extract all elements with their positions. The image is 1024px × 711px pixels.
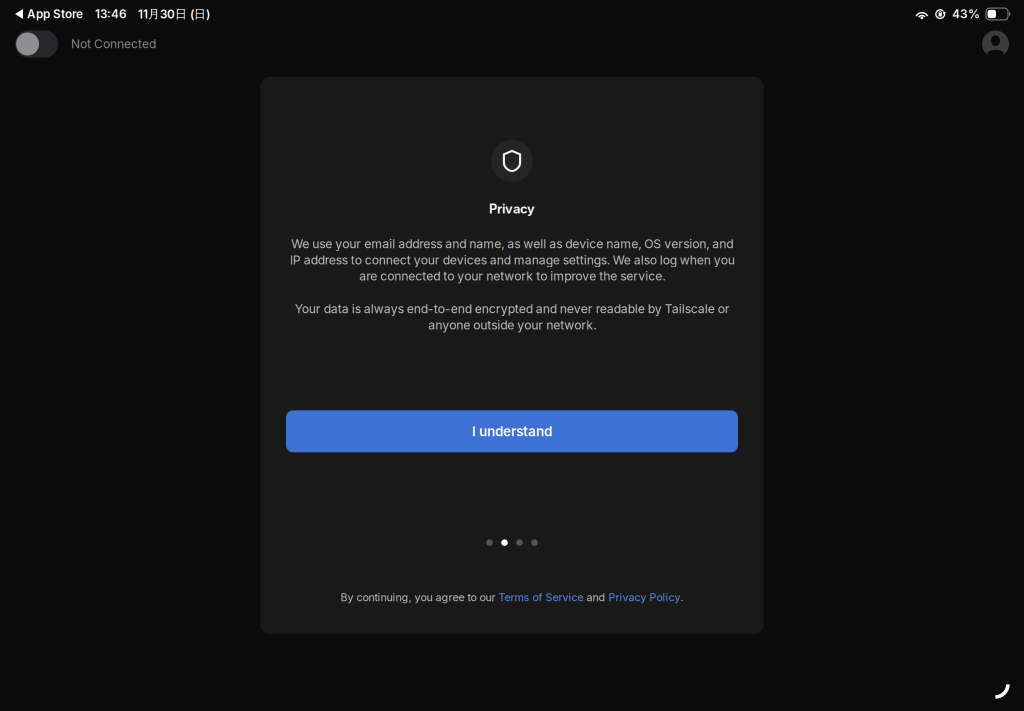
staticText: App Store — [27, 7, 83, 21]
staticText: 13:46 — [95, 7, 127, 21]
button[interactable]: I understand — [286, 410, 738, 452]
staticText: Privacy — [489, 201, 535, 216]
staticText: We use your email address and name, as w… — [289, 236, 734, 283]
staticText: . — [680, 591, 683, 604]
button[interactable]: App Store — [15, 7, 83, 21]
staticText: and — [583, 591, 608, 604]
button[interactable]: Terms of Service — [498, 591, 583, 604]
staticText: Privacy Policy — [608, 591, 680, 604]
staticText: Your data is always end-to-end encrypted… — [294, 301, 729, 332]
staticText: I understand — [472, 423, 552, 439]
staticText: 11月30日 (日) — [138, 7, 210, 21]
button[interactable]: Privacy Policy — [608, 591, 680, 604]
button[interactable]: Account — [982, 30, 1009, 57]
staticText: Terms of Service — [498, 591, 583, 604]
staticText: 43% — [952, 7, 980, 21]
staticText: By continuing, you agree to our — [340, 591, 498, 604]
staticText: Not Connected — [71, 37, 156, 51]
button[interactable]: Not Connected — [15, 30, 156, 58]
